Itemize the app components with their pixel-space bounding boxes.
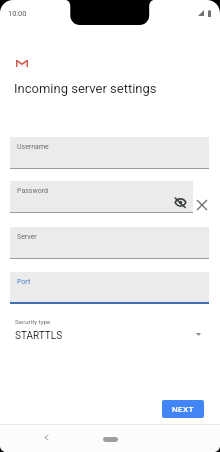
staticText: Incoming server settings — [14, 81, 157, 96]
button[interactable]: Back — [38, 429, 55, 446]
staticText: Server — [17, 233, 37, 241]
button[interactable]: Port — [10, 272, 209, 304]
staticText: Security type — [15, 318, 51, 325]
button[interactable]: Password — [10, 181, 193, 213]
button[interactable]: NEXT — [162, 400, 204, 418]
button[interactable]: Show password — [175, 197, 186, 208]
button[interactable]: Security type — [0, 314, 220, 346]
staticText: STARTTLS — [15, 330, 63, 342]
button[interactable]: Username — [10, 137, 209, 169]
button[interactable]: Clear — [196, 199, 208, 211]
staticText: NEXT — [172, 405, 194, 414]
staticText: Username — [17, 143, 49, 151]
staticText: 10:00 — [8, 9, 27, 18]
button[interactable]: Home — [103, 437, 118, 442]
button[interactable]: Server — [10, 227, 209, 259]
staticText: Password — [17, 187, 48, 195]
staticText: Port — [17, 278, 31, 286]
